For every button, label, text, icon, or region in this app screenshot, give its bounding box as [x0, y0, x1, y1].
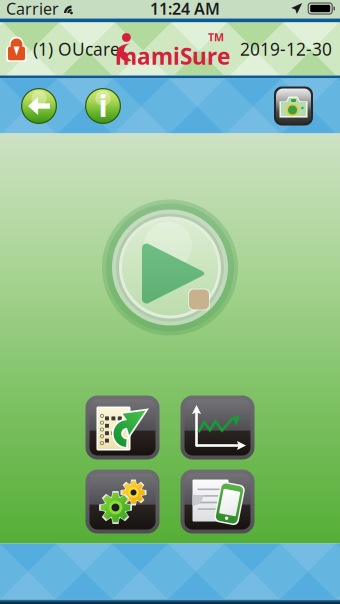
button[interactable]: Start measurement [102, 199, 238, 335]
button[interactable]: Camera [274, 86, 313, 125]
button[interactable]: Trend chart [180, 395, 254, 459]
button[interactable]: Device [180, 469, 254, 533]
button[interactable]: Information [85, 88, 121, 124]
staticText: mamiSure [115, 41, 231, 71]
staticText: Carrier [6, 0, 59, 19]
staticText: 11:24 AM [150, 0, 220, 19]
staticText: (1) OUcare [33, 37, 120, 60]
button[interactable]: Back [21, 88, 57, 124]
staticText: TM [208, 30, 224, 44]
staticText: i [98, 85, 107, 125]
button[interactable]: Settings [85, 469, 159, 533]
staticText: 2019-12-30 [240, 37, 332, 60]
button[interactable]: Records [85, 395, 159, 459]
